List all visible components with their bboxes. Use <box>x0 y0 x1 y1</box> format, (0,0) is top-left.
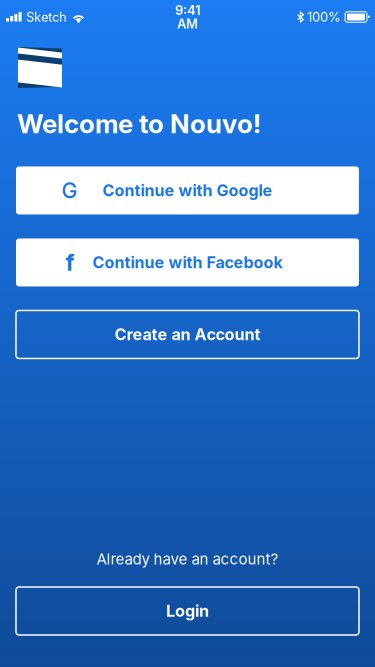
staticText: 9:41 <box>175 2 200 18</box>
button[interactable]: Continue with Google <box>16 166 359 214</box>
staticText: G <box>61 178 77 203</box>
button[interactable]: Continue with Facebook <box>16 238 359 286</box>
staticText: f <box>65 249 74 276</box>
staticText: Sketch <box>26 9 67 25</box>
staticText: Login <box>166 601 209 621</box>
button[interactable]: Login <box>16 587 359 635</box>
button[interactable]: Create an Account <box>16 310 359 358</box>
staticText: Create an Account <box>114 325 260 344</box>
staticText: Already have an account? <box>96 550 278 568</box>
staticText: Welcome to Nouvo! <box>17 108 261 139</box>
staticText: 100% <box>307 9 341 25</box>
staticText: AM <box>177 16 198 31</box>
staticText: Continue with Google <box>102 181 272 200</box>
staticText: Continue with Facebook <box>92 253 282 272</box>
